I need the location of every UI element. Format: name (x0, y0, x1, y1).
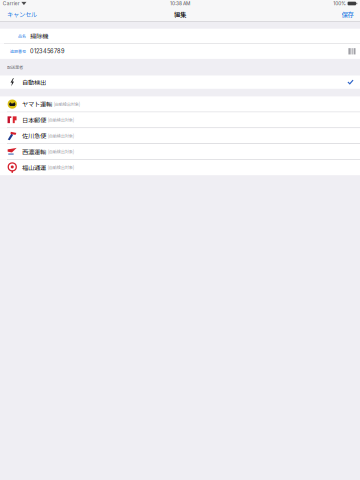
staticText: 追跡番号 (10, 48, 26, 54)
staticText: 自動検出 (22, 78, 46, 87)
button[interactable]: 福山通運 (0, 160, 360, 175)
staticText: 編集 (174, 10, 186, 19)
button[interactable]: 日本郵便 (0, 112, 360, 128)
staticText: (自動検出対象) (48, 117, 74, 123)
staticText: 福山通運 (22, 163, 46, 172)
button[interactable]: 保存 (337, 7, 360, 21)
staticText: 配送業者 (7, 64, 23, 70)
staticText: 佐川急便 (22, 131, 46, 140)
button[interactable]: キャンセル (0, 7, 41, 21)
staticText: キャンセル (7, 10, 37, 19)
staticText: Carrier (3, 1, 20, 6)
staticText: 10:38 AM (170, 1, 190, 6)
staticText: (自動検出対象) (48, 149, 74, 155)
button[interactable]: 自動検出 (0, 75, 360, 89)
staticText: 保存 (341, 10, 353, 19)
staticText: 100% (333, 1, 346, 6)
staticText: 日本郵便 (22, 115, 46, 124)
staticText: 西濃運輸 (22, 147, 46, 156)
staticText: (自動検出対象) (48, 133, 74, 139)
button[interactable]: ヤマト運輸 (0, 96, 360, 112)
staticText: 品名 (18, 33, 26, 39)
staticText: (自動検出対象) (54, 101, 80, 107)
button[interactable]: 西濃運輸 (0, 144, 360, 159)
staticText: 0123456789 (30, 48, 65, 55)
button[interactable]: 佐川急便 (0, 128, 360, 143)
staticText: (自動検出対象) (48, 164, 74, 171)
staticText: ヤマト運輸 (22, 99, 52, 109)
staticText: 掃除機 (30, 31, 48, 40)
